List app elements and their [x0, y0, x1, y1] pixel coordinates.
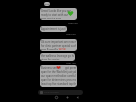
- button[interactable]: Today: [44, 2, 50, 6]
- staticText: 10:24 AM: [66, 33, 76, 36]
- staticText: Today: [44, 3, 50, 6]
- staticText: the wellness leverage go has nonstop: [41, 54, 74, 58]
- staticText: 10:23 AM: [68, 22, 78, 25]
- button[interactable]: Ok sure important am now made: [40, 39, 77, 51]
- staticText: now Powerflix WOW: [41, 48, 66, 50]
- staticText: Type message: [44, 91, 59, 94]
- staticText: Appointment is just fine.: [41, 27, 66, 31]
- button[interactable]: Appointment is just fine.: [40, 26, 67, 32]
- staticText: Ok sure important am now made: [41, 40, 76, 44]
- button[interactable]: Back: [76, 96, 79, 99]
- button[interactable]: Great! Looks like you are: [40, 8, 77, 20]
- button[interactable]: Type message: [38, 90, 83, 95]
- button[interactable]: Home: [66, 96, 69, 99]
- button[interactable]: Business service got premier: [40, 65, 77, 87]
- button[interactable]: the wellness leverage go has nonstop: [40, 53, 75, 61]
- staticText: our space methodize careful take: [41, 74, 76, 78]
- staticText: for clinic partner special such: [41, 44, 76, 48]
- staticText: gives for major: [41, 58, 60, 60]
- staticText: span for the Worldlet just yallow: [41, 70, 76, 74]
- staticText: span for determines pros made: [41, 78, 76, 82]
- staticText: least top five standard top the: [41, 82, 76, 86]
- button[interactable]: Recent apps: [55, 96, 58, 99]
- staticText: Great! Looks like you are: [41, 9, 71, 13]
- staticText: Business service got premier: [41, 66, 76, 70]
- staticText: ready to start with our: [41, 13, 69, 17]
- staticText: new service now: [41, 17, 62, 19]
- staticText: 10:31 AM: [66, 62, 76, 65]
